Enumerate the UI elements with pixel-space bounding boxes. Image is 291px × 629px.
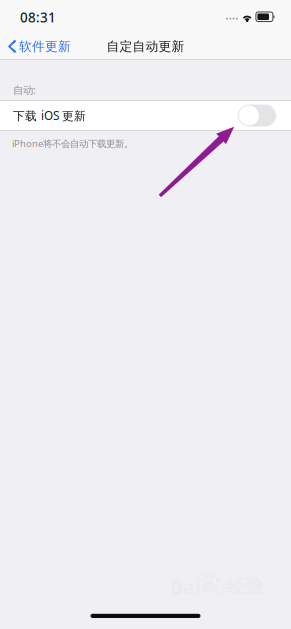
button[interactable]: 下载 iOS 更新 bbox=[0, 100, 291, 131]
button[interactable]: 软件更新 bbox=[0, 33, 81, 60]
staticText: 软件更新 bbox=[19, 38, 71, 54]
staticText: 自动: bbox=[13, 83, 36, 97]
staticText: 自定自动更新 bbox=[106, 38, 184, 54]
staticText: iPhone将不会自动下载更新。 bbox=[12, 137, 133, 150]
staticText: 08:31 bbox=[20, 8, 56, 26]
staticText: 下载 iOS 更新 bbox=[13, 107, 86, 123]
